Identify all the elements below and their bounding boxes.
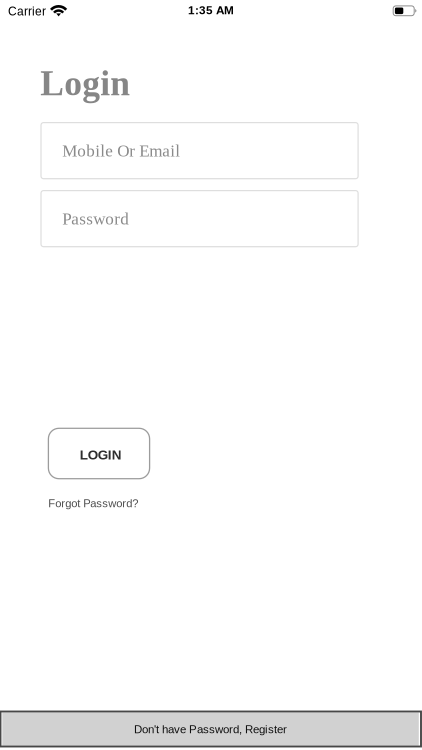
staticText: Login [40, 64, 130, 103]
button[interactable]: LOGIN [48, 428, 150, 479]
button[interactable]: Forgot Password? [48, 497, 138, 510]
button[interactable]: Password [41, 191, 358, 247]
button[interactable]: Mobile Or Email [41, 123, 358, 179]
staticText: Password [62, 209, 129, 228]
staticText: Mobile Or Email [62, 141, 180, 160]
staticText: LOGIN [80, 447, 122, 462]
button[interactable]: Don't have Password, Register [0, 711, 422, 747]
staticText: Carrier [8, 5, 46, 18]
staticText: 1:35 AM [188, 4, 234, 17]
staticText: Forgot Password? [48, 497, 138, 510]
staticText: Don't have Password, Register [134, 723, 287, 736]
